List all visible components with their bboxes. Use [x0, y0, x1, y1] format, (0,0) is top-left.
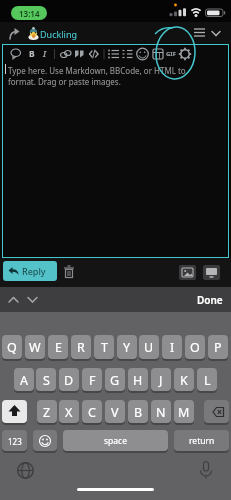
staticText: G [110, 372, 120, 389]
staticText: B [134, 404, 143, 421]
staticText: O [190, 339, 200, 356]
button[interactable]: M [174, 400, 194, 424]
staticText: M [178, 404, 190, 421]
button[interactable]: return [174, 430, 229, 452]
button[interactable] [33, 430, 57, 452]
button[interactable]: V [105, 400, 125, 424]
button[interactable]: Q [2, 335, 22, 360]
button[interactable]: W [25, 335, 45, 360]
staticText: N [156, 404, 166, 421]
button[interactable] [204, 400, 229, 424]
staticText: D [64, 372, 74, 389]
button[interactable]: J [151, 368, 171, 392]
button[interactable] [203, 265, 220, 280]
button[interactable]: K [174, 368, 194, 392]
button[interactable]: Z [37, 400, 57, 424]
button[interactable]: 123 [2, 430, 27, 452]
staticText: E [55, 339, 62, 356]
button[interactable]: Duckling [40, 28, 77, 40]
button[interactable] [198, 460, 214, 480]
button[interactable]: S [36, 368, 56, 392]
button[interactable]: O [185, 335, 205, 360]
button[interactable]: I [43, 48, 47, 60]
button[interactable]: D [59, 368, 79, 392]
button[interactable]: A [14, 368, 34, 392]
button[interactable]: L [197, 368, 217, 392]
button[interactable]: G [105, 368, 125, 392]
staticText: L [204, 372, 211, 389]
staticText: Q [7, 339, 17, 356]
staticText: T [101, 339, 108, 356]
button[interactable] [2, 400, 27, 424]
button[interactable]: H [128, 368, 148, 392]
staticText: 13:14 [19, 8, 40, 19]
staticText: return [189, 435, 215, 447]
staticText: A [20, 372, 28, 389]
staticText: S [43, 372, 50, 389]
staticText: Z [43, 404, 51, 421]
button[interactable]: P [208, 335, 228, 360]
staticText: U [144, 339, 154, 356]
button[interactable]: I [162, 335, 182, 360]
button[interactable] [16, 461, 35, 480]
button[interactable] [191, 22, 231, 44]
button[interactable] [179, 265, 196, 280]
staticText: I [170, 339, 175, 356]
staticText: J [159, 372, 163, 389]
staticText: Y [123, 339, 131, 356]
staticText: V [111, 404, 119, 421]
staticText: X [65, 404, 73, 421]
button[interactable]: X [59, 400, 79, 424]
staticText: F [89, 372, 96, 389]
staticText: Type here. Use Markdown, BBCode, or HTML… [8, 65, 186, 87]
button[interactable]: U [139, 335, 159, 360]
button[interactable]: B [29, 48, 35, 60]
staticText: space [104, 435, 127, 447]
button[interactable]: Y [117, 335, 137, 360]
button[interactable]: Reply [3, 261, 57, 281]
button[interactable]: N [151, 400, 171, 424]
button[interactable]: B [128, 400, 148, 424]
button[interactable]: Done [197, 293, 223, 307]
button[interactable] [0, 287, 46, 312]
staticText: H [133, 372, 143, 389]
button[interactable]: GIF [166, 50, 176, 58]
staticText: C [88, 404, 96, 421]
button[interactable]: T [94, 335, 114, 360]
staticText: R [77, 339, 85, 356]
staticText: W [29, 339, 41, 356]
button[interactable] [62, 264, 76, 280]
staticText: Reply [22, 265, 46, 277]
staticText: K [180, 372, 188, 389]
staticText: P [214, 339, 222, 356]
button[interactable]: space [63, 430, 168, 452]
button[interactable]: 13:14 [11, 6, 47, 20]
button[interactable]: F [82, 368, 102, 392]
button[interactable]: E [48, 335, 68, 360]
button[interactable]: R [71, 335, 91, 360]
staticText: 123 [8, 436, 22, 447]
button[interactable]: C [82, 400, 102, 424]
